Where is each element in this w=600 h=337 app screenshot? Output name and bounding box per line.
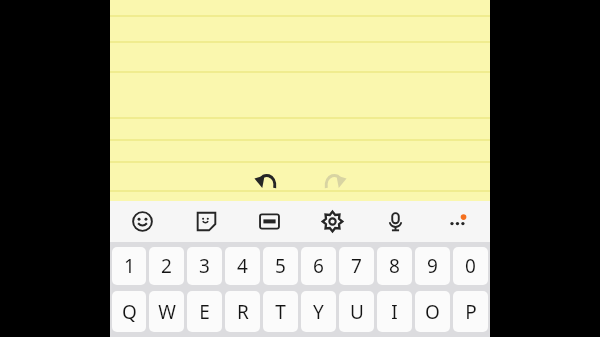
button[interactable]: 5 <box>263 247 298 285</box>
staticText: 7 <box>351 253 362 279</box>
button[interactable]: Redo <box>318 165 352 199</box>
button[interactable]: Q <box>112 291 146 332</box>
button[interactable]: W <box>149 291 184 332</box>
staticText: T <box>275 299 286 325</box>
staticText: 1 <box>124 253 135 279</box>
button[interactable]: I <box>377 291 412 332</box>
staticText: 8 <box>389 253 400 279</box>
staticText: W <box>158 299 176 325</box>
staticText: 4 <box>237 253 248 279</box>
staticText: E <box>199 299 210 325</box>
button[interactable]: T <box>263 291 298 332</box>
staticText: 3 <box>199 253 210 279</box>
button[interactable]: Y <box>301 291 336 332</box>
button[interactable]: E <box>187 291 222 332</box>
button[interactable]: 7 <box>339 247 374 285</box>
button[interactable]: 2 <box>149 247 184 285</box>
button[interactable]: Settings <box>301 201 364 242</box>
staticText: Y <box>313 299 324 325</box>
button[interactable]: More options <box>427 201 490 242</box>
staticText: O <box>425 299 440 325</box>
button[interactable]: 4 <box>225 247 260 285</box>
button[interactable]: 0 <box>453 247 488 285</box>
button[interactable]: U <box>339 291 374 332</box>
button[interactable]: 9 <box>415 247 450 285</box>
staticText: 6 <box>313 253 324 279</box>
staticText: U <box>350 299 364 325</box>
staticText: 9 <box>427 253 438 279</box>
button[interactable]: 3 <box>187 247 222 285</box>
staticText: 2 <box>161 253 172 279</box>
button[interactable]: 1 <box>112 247 146 285</box>
button[interactable]: Voice input <box>364 201 427 242</box>
staticText: I <box>391 299 398 325</box>
button[interactable]: 8 <box>377 247 412 285</box>
staticText: Q <box>122 299 137 325</box>
staticText: 5 <box>275 253 286 279</box>
staticText: R <box>237 299 249 325</box>
button[interactable]: Stickers <box>174 201 238 242</box>
staticText: P <box>465 299 477 325</box>
button[interactable]: GIF <box>238 201 301 242</box>
button[interactable]: Emoji <box>110 201 174 242</box>
button[interactable]: Undo <box>248 165 282 199</box>
button[interactable]: 6 <box>301 247 336 285</box>
button[interactable]: R <box>225 291 260 332</box>
button[interactable]: O <box>415 291 450 332</box>
staticText: 0 <box>465 253 476 279</box>
button[interactable]: P <box>453 291 488 332</box>
